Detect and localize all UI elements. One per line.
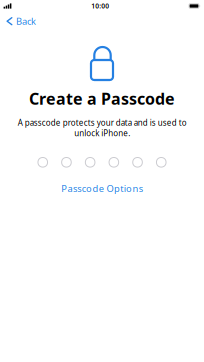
staticText: Back [16, 15, 36, 27]
staticText: Passcode Options [61, 182, 143, 194]
staticText: Create a Passcode [29, 88, 175, 109]
staticText: A passcode protects your data and is use… [17, 117, 186, 138]
button[interactable]: Passcode Options [51, 179, 153, 197]
staticText: 10:00 [91, 2, 109, 10]
button[interactable]: Back [0, 10, 44, 32]
